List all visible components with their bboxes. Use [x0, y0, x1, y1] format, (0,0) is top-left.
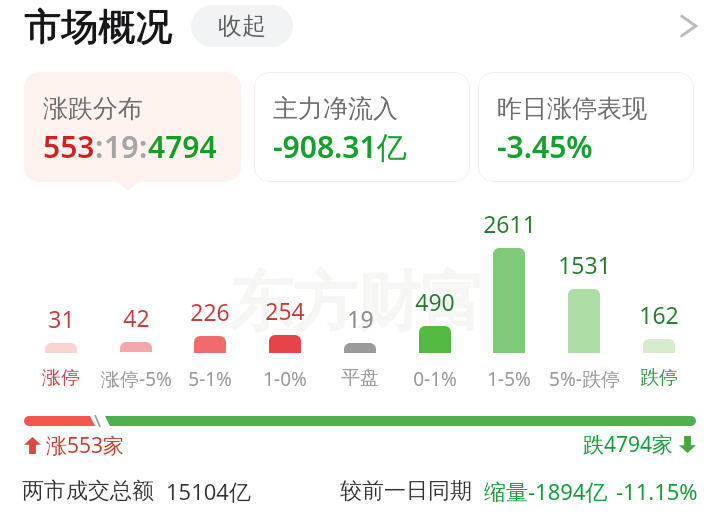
staticText: 涨553家 — [46, 431, 125, 460]
button[interactable]: 展开更多 — [666, 3, 712, 49]
staticText: 19 — [347, 303, 374, 334]
staticText: 5%-跌停 — [549, 366, 620, 392]
staticText: 缩量-1894亿 — [484, 476, 608, 506]
staticText: 主力净流入 — [273, 93, 398, 124]
staticText: 2611 — [483, 208, 536, 239]
staticText: 162 — [639, 299, 679, 330]
staticText: 553 — [43, 126, 95, 167]
staticText: 市场概况 — [24, 3, 172, 50]
staticText: 15104亿 — [166, 476, 251, 506]
staticText: 市场概况 — [24, 4, 172, 51]
staticText: -908.31亿 — [273, 126, 407, 167]
staticText: 涨跌分布 — [43, 93, 143, 124]
staticText: 东方财富 — [229, 262, 485, 343]
staticText: 平盘 — [341, 366, 379, 390]
staticText: 较前一日同期 — [340, 477, 472, 505]
staticText: : — [95, 126, 104, 167]
staticText: -3.45% — [497, 126, 593, 167]
staticText: 1-5% — [487, 366, 531, 392]
staticText: 5-1% — [188, 366, 232, 392]
staticText: 收起 — [218, 11, 266, 41]
button[interactable]: 收起 — [191, 5, 293, 47]
staticText: 涨停 — [42, 366, 80, 390]
staticText: 0-1% — [413, 366, 457, 392]
staticText: 两市成交总额 — [22, 477, 154, 505]
staticText: 跌停 — [640, 366, 678, 390]
staticText: 31 — [48, 303, 75, 334]
button[interactable]: 主力净流入 — [254, 72, 470, 182]
staticText: 1-0% — [263, 366, 307, 392]
staticText: 市场概况 — [25, 3, 173, 50]
button[interactable]: 昨日涨停表现 — [478, 72, 694, 182]
staticText: 42 — [123, 302, 150, 333]
staticText: 226 — [190, 296, 230, 327]
staticText: 254 — [265, 295, 305, 326]
staticText: 昨日涨停表现 — [497, 93, 647, 124]
staticText: 490 — [415, 286, 455, 317]
staticText: 4794 — [148, 126, 217, 167]
staticText: 涨停-5% — [101, 366, 172, 392]
staticText: 跌4794家 — [583, 430, 674, 459]
staticText: -11.15% — [616, 476, 698, 506]
staticText: 1531 — [558, 249, 611, 280]
staticText: 19 — [104, 126, 139, 167]
staticText: : — [139, 126, 148, 167]
button[interactable]: 涨跌分布 — [24, 72, 241, 182]
